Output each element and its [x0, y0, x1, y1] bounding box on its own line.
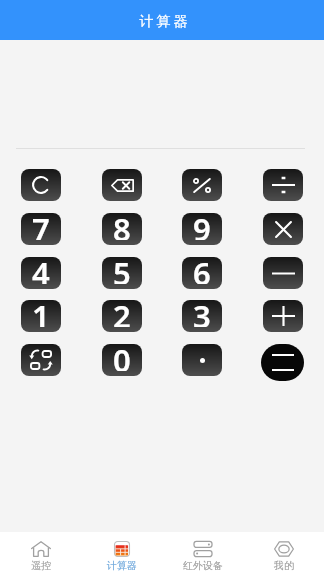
staticText: 9 [193, 213, 211, 240]
button[interactable]: Plus [263, 300, 303, 332]
button[interactable]: 4 [21, 257, 61, 289]
staticText: 遥控 [31, 559, 51, 572]
staticText: 4 [32, 257, 50, 284]
button[interactable]: 1 [21, 300, 61, 332]
button[interactable]: Equals [261, 344, 304, 381]
button[interactable]: 遥控 [0, 532, 81, 576]
button[interactable]: Backspace [102, 169, 142, 201]
staticText: 7 [32, 213, 50, 240]
staticText: 5 [113, 257, 131, 284]
button[interactable]: Convert units [21, 344, 61, 376]
button[interactable]: Decimal point [182, 344, 222, 376]
button[interactable]: 2 [102, 300, 142, 332]
button[interactable]: 5 [102, 257, 142, 289]
button[interactable]: 6 [182, 257, 222, 289]
staticText: 计算器 [138, 13, 189, 31]
button[interactable]: 计算器 [81, 532, 162, 576]
staticText: 2 [113, 300, 131, 327]
button[interactable]: 9 [182, 213, 222, 245]
button[interactable]: % [182, 169, 222, 201]
button[interactable]: Multiply [263, 213, 303, 245]
staticText: 红外设备 [183, 559, 223, 572]
button[interactable]: Clear [21, 169, 61, 201]
button[interactable]: 3 [182, 300, 222, 332]
button[interactable]: 计算器 [0, 0, 324, 40]
button[interactable]: 8 [102, 213, 142, 245]
button[interactable]: 红外设备 [162, 532, 243, 576]
staticText: 0 [113, 344, 131, 371]
staticText: 8 [113, 213, 131, 240]
button[interactable]: 我的 [243, 532, 324, 576]
button[interactable]: 0 [102, 344, 142, 376]
staticText: 计算器 [107, 559, 137, 572]
staticText: 我的 [274, 559, 294, 572]
staticText: 3 [193, 300, 211, 327]
button[interactable]: Minus [263, 257, 303, 289]
button[interactable]: Divide [263, 169, 303, 201]
staticText: 1 [32, 300, 50, 327]
staticText: 6 [193, 257, 211, 284]
button[interactable]: 7 [21, 213, 61, 245]
